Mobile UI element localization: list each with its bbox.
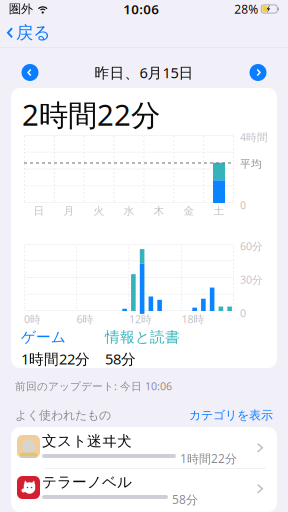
staticText: 28% [234, 1, 258, 17]
staticText: カテゴリを表示 [189, 408, 273, 423]
staticText: 58分 [172, 491, 198, 507]
staticText: 戻る [16, 22, 51, 43]
staticText: 0時 [24, 312, 41, 326]
button[interactable]: 文スト迷ヰ犬 [11, 427, 277, 471]
staticText: 昨日、6月15日 [94, 63, 193, 82]
staticText: 4時間 [240, 130, 268, 144]
staticText: 平均 [240, 157, 262, 171]
staticText: 1時間22分 [180, 450, 237, 466]
button[interactable]: カテゴリを表示 [189, 408, 273, 423]
staticText: 木 [153, 204, 164, 217]
staticText: 12時 [129, 312, 152, 326]
staticText: 水 [123, 204, 134, 217]
staticText: よく使われたもの [15, 408, 111, 423]
staticText: 0 [240, 198, 246, 212]
staticText: 情報と読書 [105, 328, 180, 346]
staticText: 金 [183, 204, 194, 217]
staticText: 30分 [240, 272, 263, 287]
staticText: 2時間22分 [22, 95, 160, 134]
button[interactable]: テラーノベル [11, 468, 277, 512]
button[interactable]: 前の日 [13, 55, 47, 89]
staticText: 10:06 [123, 0, 159, 18]
staticText: 1時間22分 [21, 349, 90, 368]
staticText: 6時 [76, 312, 93, 326]
staticText: ゲーム [21, 328, 66, 346]
staticText: テラーノベル [42, 473, 132, 491]
staticText: 60分 [240, 239, 263, 253]
staticText: 土 [213, 204, 224, 217]
staticText: 火 [93, 204, 104, 217]
staticText: 58分 [105, 349, 136, 368]
staticText: 文スト迷ヰ犬 [42, 432, 132, 450]
staticText: 0 [240, 306, 246, 320]
staticText: 日 [33, 204, 44, 217]
button[interactable]: 次の日 [241, 55, 275, 89]
staticText: 圏外 [9, 2, 33, 16]
button[interactable]: 戻る [0, 19, 60, 47]
staticText: 前回のアップデート: 今日 10:06 [15, 379, 172, 393]
staticText: 18時 [181, 312, 204, 326]
staticText: 月 [63, 204, 74, 217]
